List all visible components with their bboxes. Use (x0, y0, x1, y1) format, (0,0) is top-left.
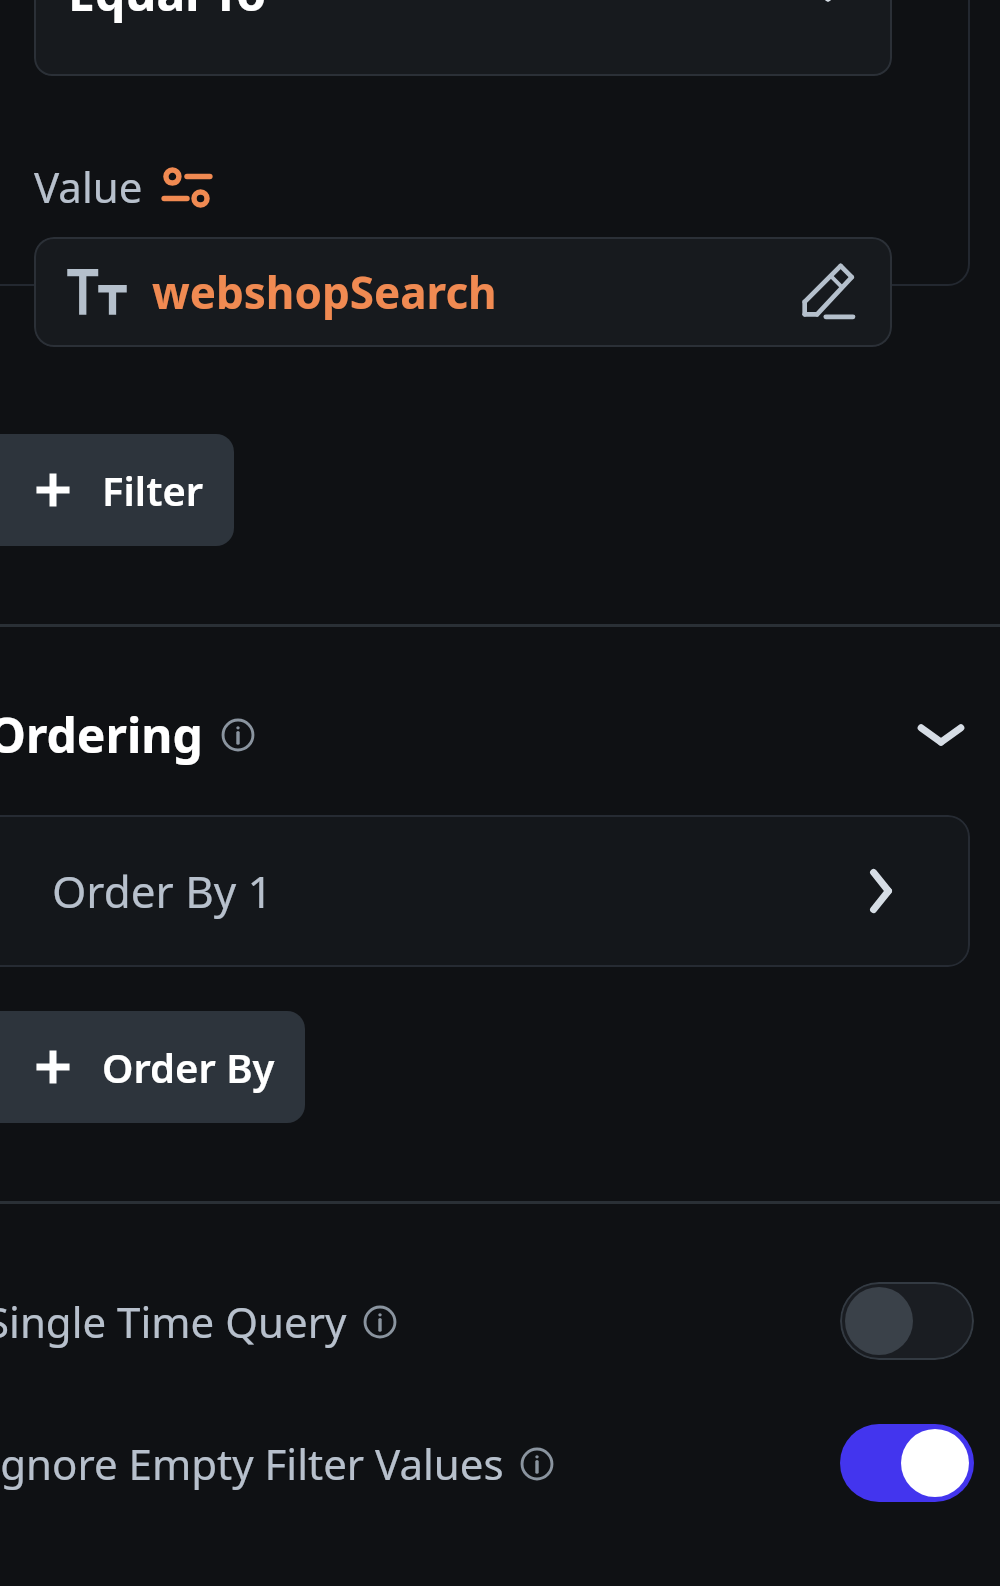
staticText: Ignore Empty Filter Values (0, 1435, 504, 1492)
staticText: Equal To (68, 0, 798, 25)
button[interactable]: Edit value (792, 257, 862, 327)
button[interactable]: webshopSearch (34, 237, 892, 347)
staticText: Value (34, 158, 143, 215)
button[interactable]: Ignore Empty Filter Values (840, 1424, 974, 1502)
button[interactable]: Filter (0, 434, 234, 546)
staticText: Order By (102, 1040, 275, 1094)
button[interactable]: Ignore Empty Filter Values (0, 1398, 1000, 1528)
button[interactable]: Single Time Query (840, 1282, 974, 1360)
staticText: Order By 1 (52, 861, 850, 921)
button[interactable]: Ordering (0, 689, 1000, 779)
staticText: Filter (102, 463, 204, 517)
button[interactable]: Order By 1 (0, 815, 970, 967)
staticText: Single Time Query (0, 1293, 347, 1350)
staticText: Ordering (0, 702, 203, 767)
button[interactable]: Order By (0, 1011, 305, 1123)
button[interactable]: Equal To (34, 0, 892, 76)
staticText: webshopSearch (152, 262, 792, 322)
button[interactable]: Single Time Query (0, 1256, 1000, 1386)
